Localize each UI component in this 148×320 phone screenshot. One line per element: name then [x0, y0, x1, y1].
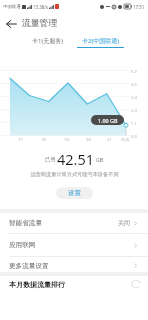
button[interactable]: 应用联网 — [0, 234, 148, 257]
button[interactable]: 更多流量设置 — [0, 257, 148, 274]
staticText: 17 — [18, 137, 23, 143]
staticText: 20 — [86, 137, 91, 143]
staticText: 已用 — [45, 156, 56, 163]
button[interactable]: 智能省流量 — [0, 213, 148, 234]
staticText: 3.4 — [131, 95, 137, 101]
staticText: 2.3 — [131, 108, 137, 114]
staticText: 17:51 — [133, 4, 145, 10]
staticText: 设置 — [68, 189, 81, 197]
staticText: 42.51 — [57, 149, 95, 167]
button[interactable]: Back — [0, 13, 22, 34]
staticText: 21 — [107, 137, 112, 143]
staticText: 1.00 GB — [98, 117, 118, 124]
button[interactable]: 卡2(中国联通) — [74, 34, 127, 50]
staticText: 中国联通 — [3, 4, 21, 10]
staticText: 1.1 — [131, 121, 137, 127]
staticText: 19 — [64, 137, 69, 143]
staticText: 卡1(无服务) — [32, 37, 64, 45]
staticText: 5.7 — [131, 69, 137, 75]
staticText: 4.5 — [131, 82, 137, 88]
staticText: 0.0 — [131, 134, 137, 140]
staticText: 运营商流量计算方式可能与本设备不同 — [30, 171, 119, 178]
button[interactable]: 卡1(无服务) — [21, 34, 74, 50]
staticText: 更多流量设置 — [9, 262, 49, 270]
staticText: 卡2(中国联通) — [82, 37, 120, 45]
staticText: 今天 — [121, 137, 130, 142]
staticText: 本月数据流量排行 — [9, 280, 65, 289]
button[interactable]: 设置 — [56, 187, 93, 199]
staticText: 关闭 — [118, 219, 130, 227]
staticText: 流量管理 — [22, 18, 58, 29]
staticText: 应用联网 — [9, 241, 36, 249]
staticText: 18 — [41, 137, 46, 143]
staticText: 13.38/s — [33, 4, 48, 10]
staticText: 智能省流量 — [9, 219, 42, 227]
button[interactable]: Refresh — [131, 279, 141, 289]
staticText: GB — [96, 156, 104, 163]
